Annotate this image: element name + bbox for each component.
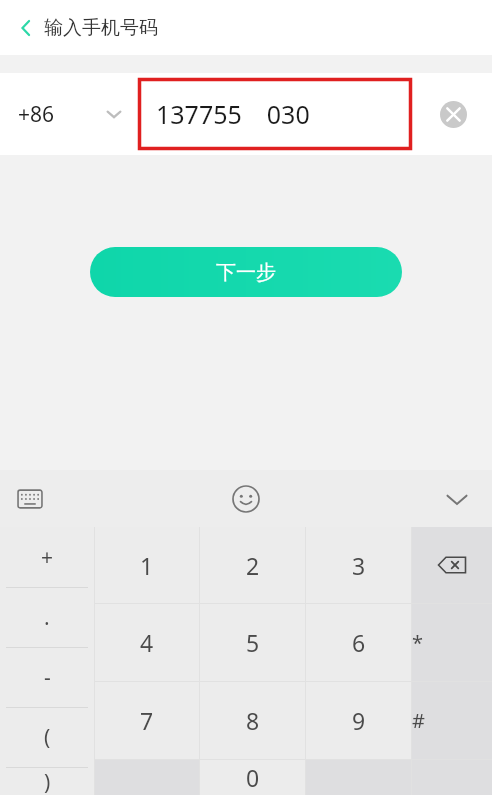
- button[interactable]: #: [412, 682, 425, 759]
- staticText: 下一步: [216, 260, 276, 285]
- button[interactable]: Emoji: [223, 476, 269, 522]
- staticText: 7: [140, 705, 154, 736]
- staticText: 4: [140, 627, 154, 658]
- button[interactable]: 7: [95, 682, 199, 759]
- button[interactable]: 6: [306, 604, 411, 681]
- button[interactable]: 8: [200, 682, 305, 759]
- button[interactable]: 3: [306, 527, 411, 603]
- staticText: (: [44, 723, 51, 752]
- button[interactable]: Backspace: [412, 527, 492, 603]
- button[interactable]: Hide keyboard: [434, 476, 480, 522]
- button[interactable]: Clear: [436, 97, 470, 131]
- staticText: .: [44, 603, 50, 632]
- staticText: 3: [352, 550, 366, 581]
- button[interactable]: +86: [0, 73, 138, 155]
- button[interactable]: 2: [200, 527, 305, 603]
- staticText: #: [412, 707, 425, 734]
- button[interactable]: 9: [306, 682, 411, 759]
- staticText: 输入手机号码: [44, 16, 158, 40]
- staticText: 8: [246, 705, 260, 736]
- staticText: 137755 030: [156, 97, 310, 131]
- button[interactable]: Keyboard: [8, 477, 52, 521]
- staticText: 1: [140, 550, 154, 581]
- button[interactable]: Back: [6, 8, 46, 48]
- staticText: 5: [246, 627, 260, 658]
- button[interactable]: 137755 030: [138, 78, 412, 150]
- button[interactable]: 1: [95, 527, 199, 603]
- button[interactable]: 0: [200, 760, 305, 795]
- button[interactable]: .: [0, 588, 94, 647]
- button[interactable]: +: [0, 527, 94, 587]
- staticText: ): [44, 768, 51, 795]
- button[interactable]: 下一步: [90, 247, 402, 297]
- staticText: -: [44, 663, 51, 692]
- button[interactable]: 4: [95, 604, 199, 681]
- staticText: +86: [18, 100, 55, 129]
- button[interactable]: ): [0, 768, 94, 795]
- button[interactable]: -: [0, 648, 94, 707]
- staticText: 9: [352, 705, 366, 736]
- staticText: 2: [246, 550, 260, 581]
- staticText: 6: [352, 627, 366, 658]
- staticText: +: [41, 543, 54, 572]
- button[interactable]: (: [0, 708, 94, 767]
- button[interactable]: *: [412, 604, 424, 681]
- button[interactable]: 5: [200, 604, 305, 681]
- staticText: 0: [246, 762, 260, 793]
- staticText: *: [412, 629, 424, 656]
